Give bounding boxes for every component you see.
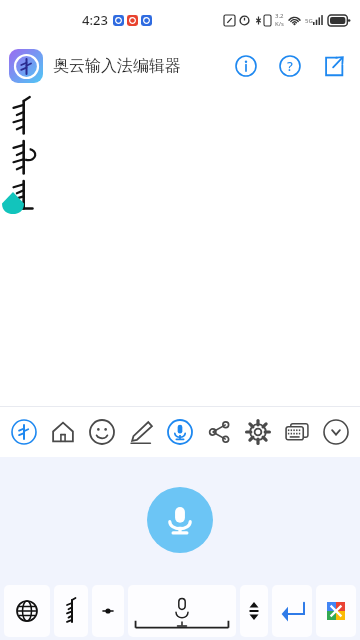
button[interactable]: Settings	[240, 414, 276, 450]
button[interactable]: Collapse	[318, 414, 354, 450]
button[interactable]: Mongolian IME	[6, 414, 42, 450]
staticText: ?	[287, 57, 293, 75]
staticText: K/s	[275, 20, 284, 28]
button[interactable]: Home	[45, 414, 81, 450]
button[interactable]	[9, 49, 43, 83]
button[interactable]: Share	[201, 414, 237, 450]
button[interactable]: Emoji	[84, 414, 120, 450]
staticText: 奥云输入法编辑器	[53, 56, 181, 76]
button[interactable]: Info	[229, 49, 263, 83]
button[interactable]: Mongolian	[54, 585, 88, 637]
button[interactable]: Space	[128, 585, 236, 637]
staticText: 3.2	[275, 12, 284, 20]
button[interactable]: Language	[4, 585, 50, 637]
button[interactable]: Move cursor	[240, 585, 268, 637]
staticText: 5G	[305, 17, 313, 25]
staticText: 4:23	[82, 11, 108, 29]
button[interactable]: Handwriting	[123, 414, 159, 450]
button[interactable]: More	[316, 585, 356, 637]
button[interactable]: Share	[317, 49, 351, 83]
button[interactable]: Start voice input	[147, 487, 213, 553]
button[interactable]: Symbols	[92, 585, 124, 637]
button[interactable]: Enter	[272, 585, 312, 637]
button[interactable]: Help	[273, 49, 307, 83]
button[interactable]: Voice input	[162, 414, 198, 450]
button[interactable]: Keyboard	[279, 414, 315, 450]
